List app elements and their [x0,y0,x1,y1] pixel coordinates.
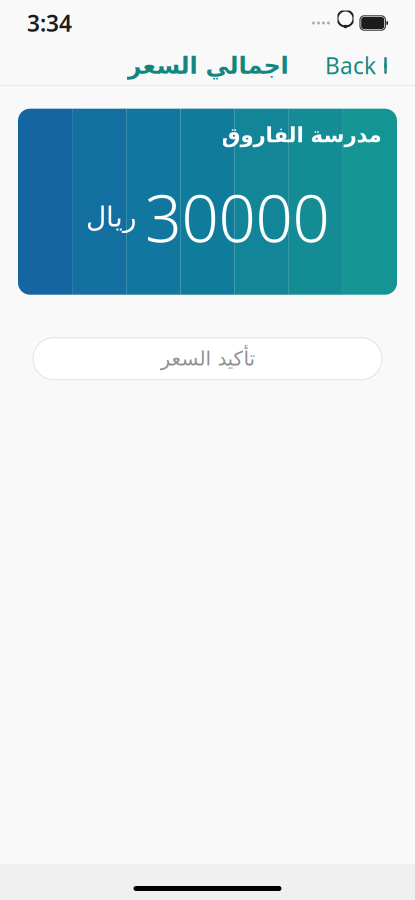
staticText: مدرسة الفاروق [221,123,381,147]
staticText: 30000 [144,173,329,260]
button[interactable]: تأكيد السعر [33,338,382,380]
staticText: 3:34 [27,8,72,38]
button[interactable]: Back [321,44,398,86]
staticText: اجمالي السعر [127,52,288,79]
staticText: ريال [85,201,136,233]
staticText: Back [325,50,376,80]
staticText: تأكيد السعر [160,347,255,370]
